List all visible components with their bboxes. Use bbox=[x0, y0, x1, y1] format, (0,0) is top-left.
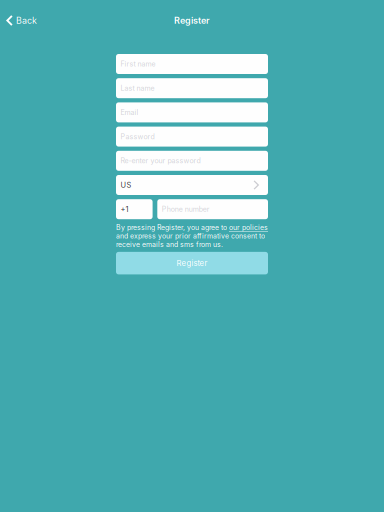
staticText: Back bbox=[16, 15, 37, 26]
staticText: US bbox=[120, 180, 131, 189]
staticText: Register bbox=[174, 15, 210, 26]
button[interactable]: US bbox=[116, 175, 268, 195]
staticText: By pressing Register, you agree to our p… bbox=[116, 223, 268, 249]
staticText: +1 bbox=[120, 205, 128, 214]
button[interactable]: Back bbox=[0, 9, 45, 32]
staticText: Phone number bbox=[162, 205, 210, 213]
button[interactable]: +1 bbox=[116, 199, 153, 219]
staticText: Last name bbox=[120, 84, 154, 92]
staticText: Password bbox=[120, 132, 154, 141]
button[interactable]: Last name bbox=[116, 78, 268, 98]
staticText: First name bbox=[120, 60, 155, 68]
button[interactable]: Phone number bbox=[157, 199, 268, 219]
button[interactable]: Register bbox=[116, 252, 268, 274]
button[interactable]: Email bbox=[116, 102, 268, 122]
button[interactable]: First name bbox=[116, 54, 268, 74]
staticText: Register bbox=[176, 258, 207, 268]
staticText: Email bbox=[120, 108, 138, 117]
button[interactable]: By pressing Register, you agree to our p… bbox=[116, 223, 268, 247]
button[interactable]: Re-enter your password bbox=[116, 151, 268, 171]
staticText: Re-enter your password bbox=[120, 156, 200, 165]
button[interactable]: Password bbox=[116, 127, 268, 147]
